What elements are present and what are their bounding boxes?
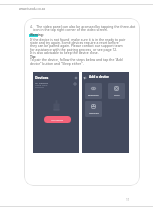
staticText: Manually — [89, 112, 99, 115]
staticText: Add device — [51, 118, 64, 121]
staticText: Tip: — [30, 54, 37, 59]
staticText: www.tuvalu.co.za — [19, 7, 46, 11]
staticText: Wi-Fi — [114, 94, 120, 97]
button[interactable]: Add device — [74, 76, 78, 80]
button[interactable]: Back — [83, 76, 87, 80]
staticText: It is also advisable to keep the device … — [30, 50, 99, 55]
staticText: for assistance with the pairing process,… — [30, 47, 118, 52]
staticText: 11 — [126, 198, 130, 202]
button[interactable]: Add device — [44, 116, 71, 123]
staticText: state and try again. Some devices requir… — [30, 40, 119, 45]
staticText: If the device is not found, make sure it… — [30, 37, 126, 42]
staticText: Add a device — [89, 75, 109, 79]
staticText: device" button and "Sleep either". — [30, 61, 84, 66]
staticText: icon in the top right corner of the vide… — [33, 27, 108, 32]
button[interactable]: Options — [73, 82, 77, 86]
staticText: Living room — [35, 84, 48, 87]
button[interactable]: Wi-Fi — [108, 83, 125, 99]
staticText: Devices — [35, 75, 49, 80]
button[interactable]: Manually — [85, 101, 102, 117]
staticText: MY DEVICES — [35, 82, 49, 85]
staticText: Warning: — [30, 33, 44, 37]
staticText: To pair the device, follow the steps bel… — [30, 57, 123, 62]
staticText: they can be paired again. Please contact… — [30, 43, 123, 48]
staticText: 4. The video panel can also be accessed … — [30, 24, 136, 29]
staticText: Bluetooth — [88, 94, 99, 97]
button[interactable]: Bluetooth — [85, 83, 102, 99]
